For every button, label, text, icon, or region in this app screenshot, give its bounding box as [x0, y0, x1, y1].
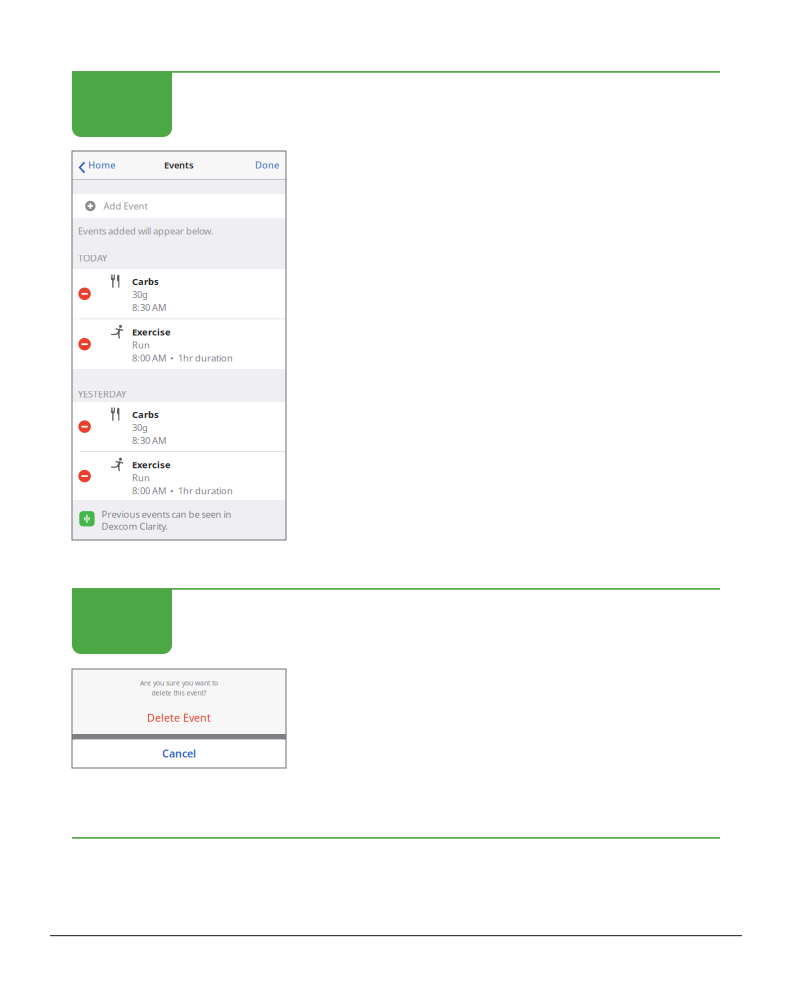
button[interactable]: Home — [72, 151, 115, 179]
staticText: Carbs — [132, 408, 159, 421]
staticText: Done — [255, 159, 279, 171]
staticText: Are you sure you want to — [140, 679, 218, 687]
button[interactable]: Carbs — [72, 269, 286, 319]
staticText: Exercise — [132, 458, 171, 471]
button[interactable]: Cancel — [72, 740, 286, 767]
button[interactable]: Exercise — [72, 319, 286, 369]
staticText: 30g — [132, 421, 148, 434]
staticText: Delete Event — [147, 710, 211, 725]
button[interactable]: Exercise — [72, 452, 286, 500]
staticText: 8:00 AM • 1hr duration — [132, 352, 233, 364]
staticText: YESTERDAY — [78, 388, 126, 400]
staticText: 8:30 AM — [132, 434, 166, 447]
staticText: delete this event? — [151, 689, 206, 697]
staticText: Dexcom Clarity. — [102, 520, 169, 532]
button[interactable]: Done — [255, 151, 286, 179]
staticText: 8:00 AM • 1hr duration — [132, 484, 233, 497]
staticText: Cancel — [162, 746, 196, 760]
staticText: Home — [88, 159, 115, 171]
staticText: 8:30 AM — [132, 301, 166, 314]
button[interactable]: Add Event — [72, 194, 286, 218]
staticText: Run — [132, 339, 150, 351]
staticText: Events added will appear below. — [78, 225, 214, 237]
staticText: Exercise — [132, 326, 171, 338]
button[interactable]: Delete Carbs — [72, 402, 97, 451]
staticText: Events — [164, 159, 194, 171]
button[interactable]: Delete Carbs — [72, 269, 97, 319]
button[interactable]: Delete Exercise — [72, 319, 97, 369]
staticText: Run — [132, 471, 150, 484]
staticText: Previous events can be seen in — [102, 508, 232, 520]
button[interactable]: Delete Exercise — [72, 452, 97, 500]
staticText: TODAY — [78, 252, 107, 264]
button[interactable]: Carbs — [72, 402, 286, 451]
staticText: Add Event — [103, 200, 147, 212]
staticText: 30g — [132, 288, 148, 301]
button[interactable]: Delete Event — [72, 708, 286, 727]
staticText: Carbs — [132, 275, 159, 288]
